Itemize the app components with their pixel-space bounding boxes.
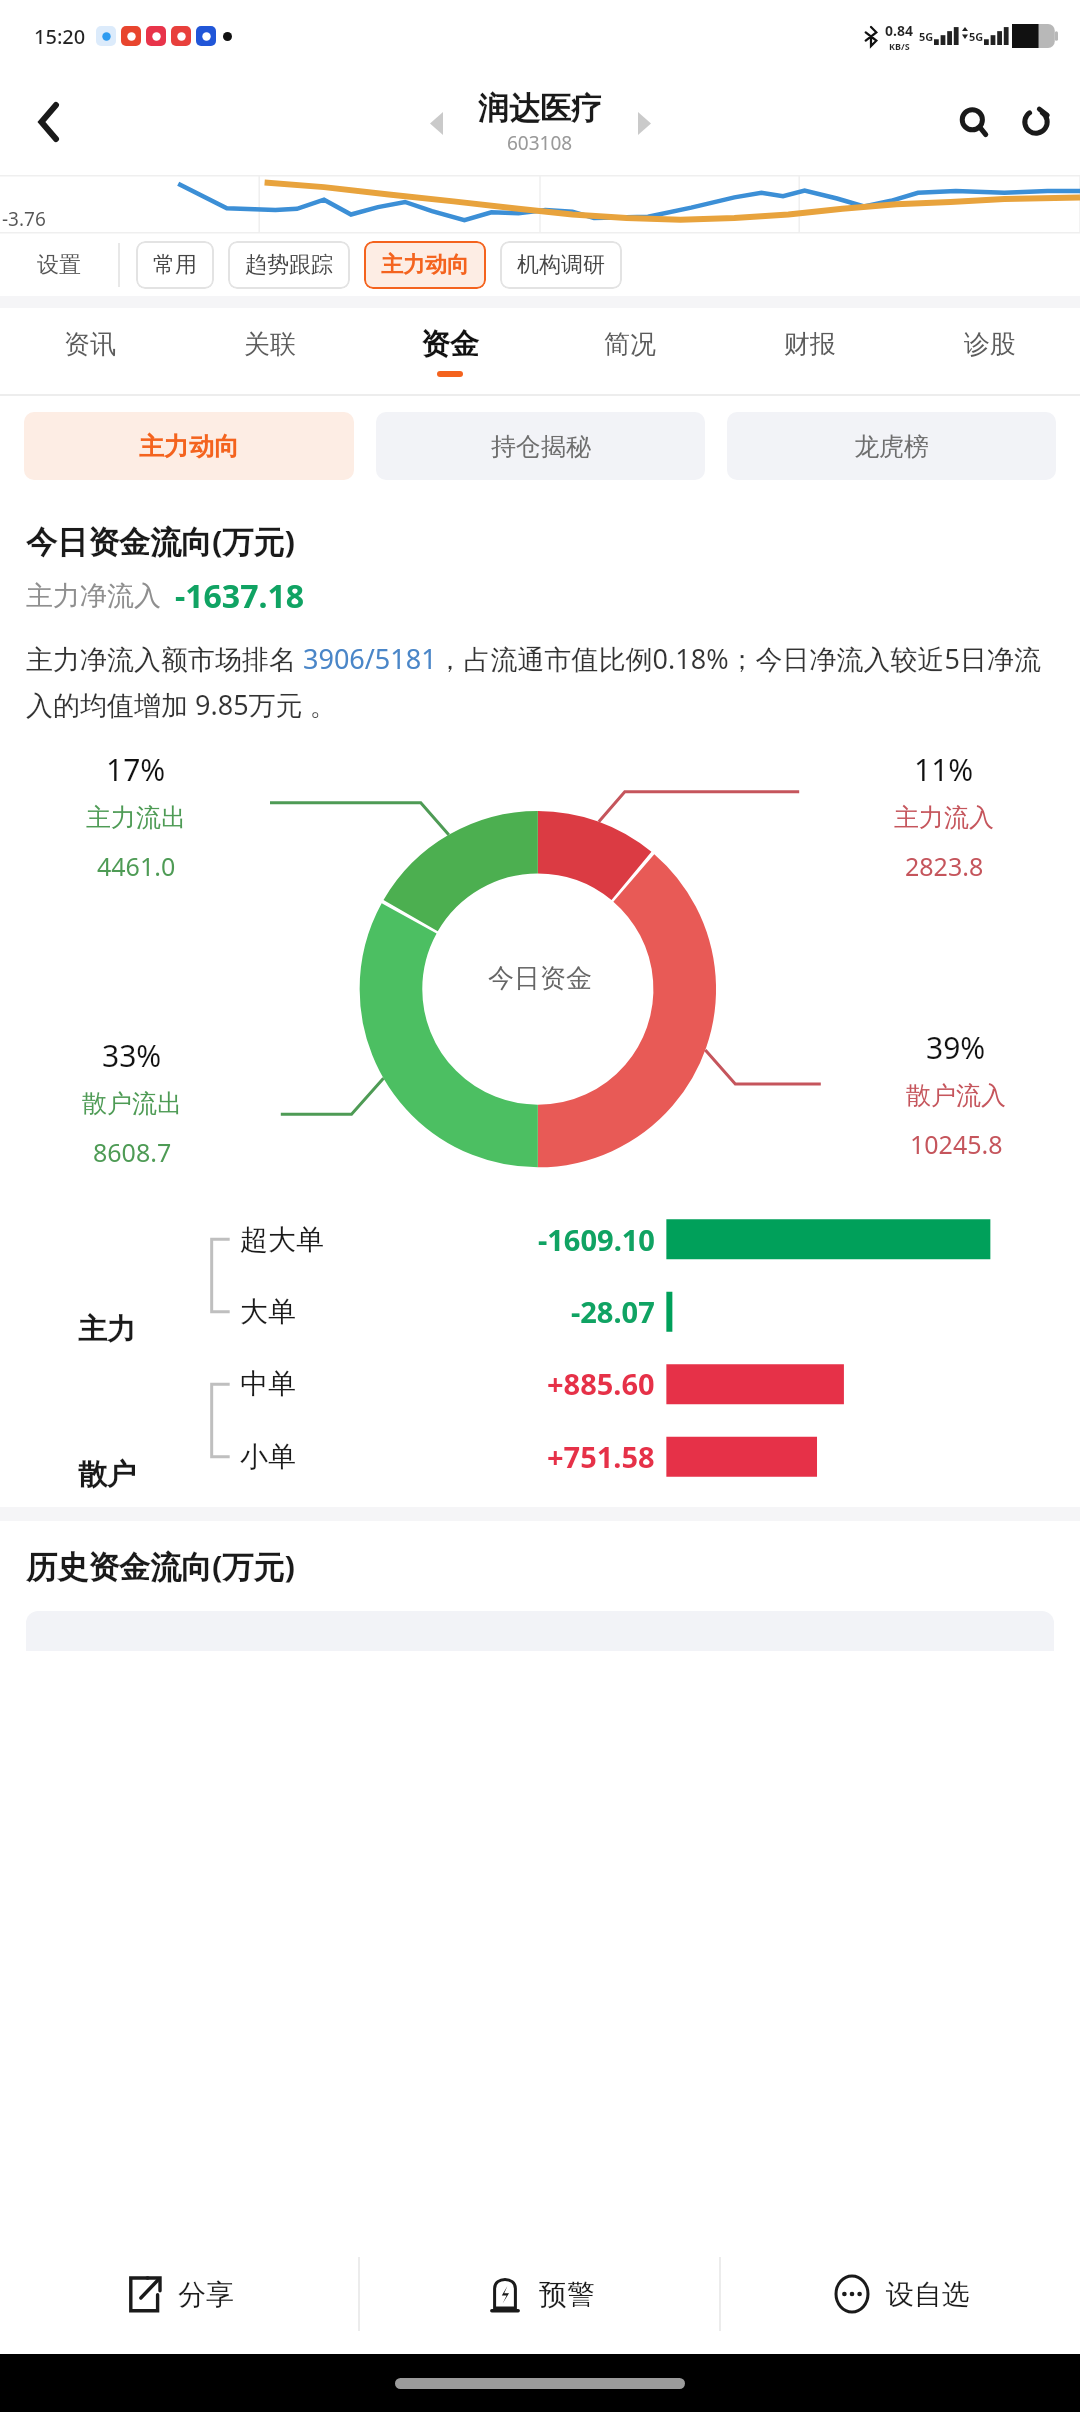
button[interactable]: 简况: [540, 308, 720, 394]
staticText: 8608.7: [93, 1135, 172, 1169]
button[interactable]: 财报: [720, 308, 900, 394]
staticText: 11%: [914, 749, 974, 790]
staticText: 散户: [78, 1456, 136, 1493]
button[interactable]: 机构调研: [500, 241, 622, 289]
button[interactable]: 持仓揭秘: [376, 412, 705, 480]
staticText: 简况: [604, 328, 656, 361]
staticText: 2823.8: [905, 849, 984, 883]
button[interactable]: 分享: [0, 2234, 358, 2354]
staticText: -28.07: [571, 1292, 655, 1331]
staticText: +885.60: [547, 1364, 655, 1403]
staticText: 5G: [969, 29, 984, 44]
staticText: KB/S: [889, 40, 910, 52]
button[interactable]: 设置: [0, 234, 118, 296]
staticText: 中单: [240, 1366, 296, 1401]
staticText: 散户流入: [906, 1080, 1006, 1111]
staticText: 小单: [240, 1439, 296, 1474]
staticText: 资讯: [64, 328, 116, 361]
staticText: 主力流入: [894, 802, 994, 833]
staticText: 财报: [784, 328, 836, 361]
staticText: 39%: [926, 1027, 986, 1068]
staticText: -3.76: [2, 206, 46, 232]
staticText: 诊股: [964, 328, 1016, 361]
staticText: 主力流出: [86, 802, 186, 833]
staticText: 持仓揭秘: [491, 431, 591, 462]
staticText: 散户流出: [82, 1088, 182, 1119]
staticText: 设自选: [886, 2277, 970, 2312]
button[interactable]: 常用: [136, 241, 214, 289]
button[interactable]: 趋势跟踪: [228, 241, 350, 289]
staticText: 603108: [507, 130, 573, 156]
staticText: 今日资金流向(万元): [26, 520, 296, 562]
staticText: 资金: [421, 326, 479, 363]
staticText: 龙虎榜: [854, 431, 929, 462]
button[interactable]: 设自选: [721, 2234, 1080, 2354]
button[interactable]: 刷新: [1010, 96, 1062, 148]
staticText: 常用: [153, 251, 197, 279]
button[interactable]: 资讯: [0, 308, 180, 394]
staticText: 分享: [178, 2277, 234, 2312]
staticText: 33%: [102, 1035, 162, 1076]
staticText: 0.84: [885, 21, 913, 40]
staticText: 17%: [106, 749, 166, 790]
staticText: 趋势跟踪: [245, 251, 333, 279]
staticText: 设置: [37, 251, 81, 279]
button[interactable]: 下一只: [624, 103, 664, 143]
staticText: 大单: [240, 1294, 296, 1329]
staticText: -1637.18: [175, 574, 305, 618]
staticText: 机构调研: [517, 251, 605, 279]
staticText: 主力净流入: [26, 579, 161, 613]
button[interactable]: 关联: [180, 308, 360, 394]
staticText: 预警: [539, 2277, 595, 2312]
staticText: 主力净流入额市场排名 3906/5181，占流通市值比例0.18%；今日净流入较…: [26, 640, 1054, 723]
button[interactable]: 主力动向: [364, 241, 486, 289]
staticText: 历史资金流向(万元): [26, 1545, 296, 1587]
staticText: 主力动向: [139, 431, 239, 462]
button[interactable]: 预警: [360, 2234, 719, 2354]
staticText: 10245.8: [910, 1127, 1003, 1161]
staticText: 15:20: [34, 23, 86, 50]
button[interactable]: 返回: [18, 91, 80, 153]
staticText: 主力: [78, 1311, 136, 1348]
button[interactable]: 搜索: [948, 96, 1000, 148]
staticText: 关联: [244, 328, 296, 361]
staticText: +751.58: [547, 1437, 655, 1476]
button[interactable]: 资金: [360, 308, 540, 394]
staticText: 润达医疗: [478, 89, 602, 128]
staticText: 今日资金: [488, 962, 592, 995]
staticText: 超大单: [240, 1222, 324, 1257]
button[interactable]: 龙虎榜: [727, 412, 1056, 480]
button[interactable]: 主力动向: [24, 412, 354, 480]
staticText: 5G: [919, 29, 934, 44]
button[interactable]: 诊股: [900, 308, 1080, 394]
button[interactable]: 上一只: [416, 103, 456, 143]
staticText: -1609.10: [538, 1220, 655, 1259]
staticText: 4461.0: [97, 849, 176, 883]
staticText: 主力动向: [381, 251, 469, 279]
